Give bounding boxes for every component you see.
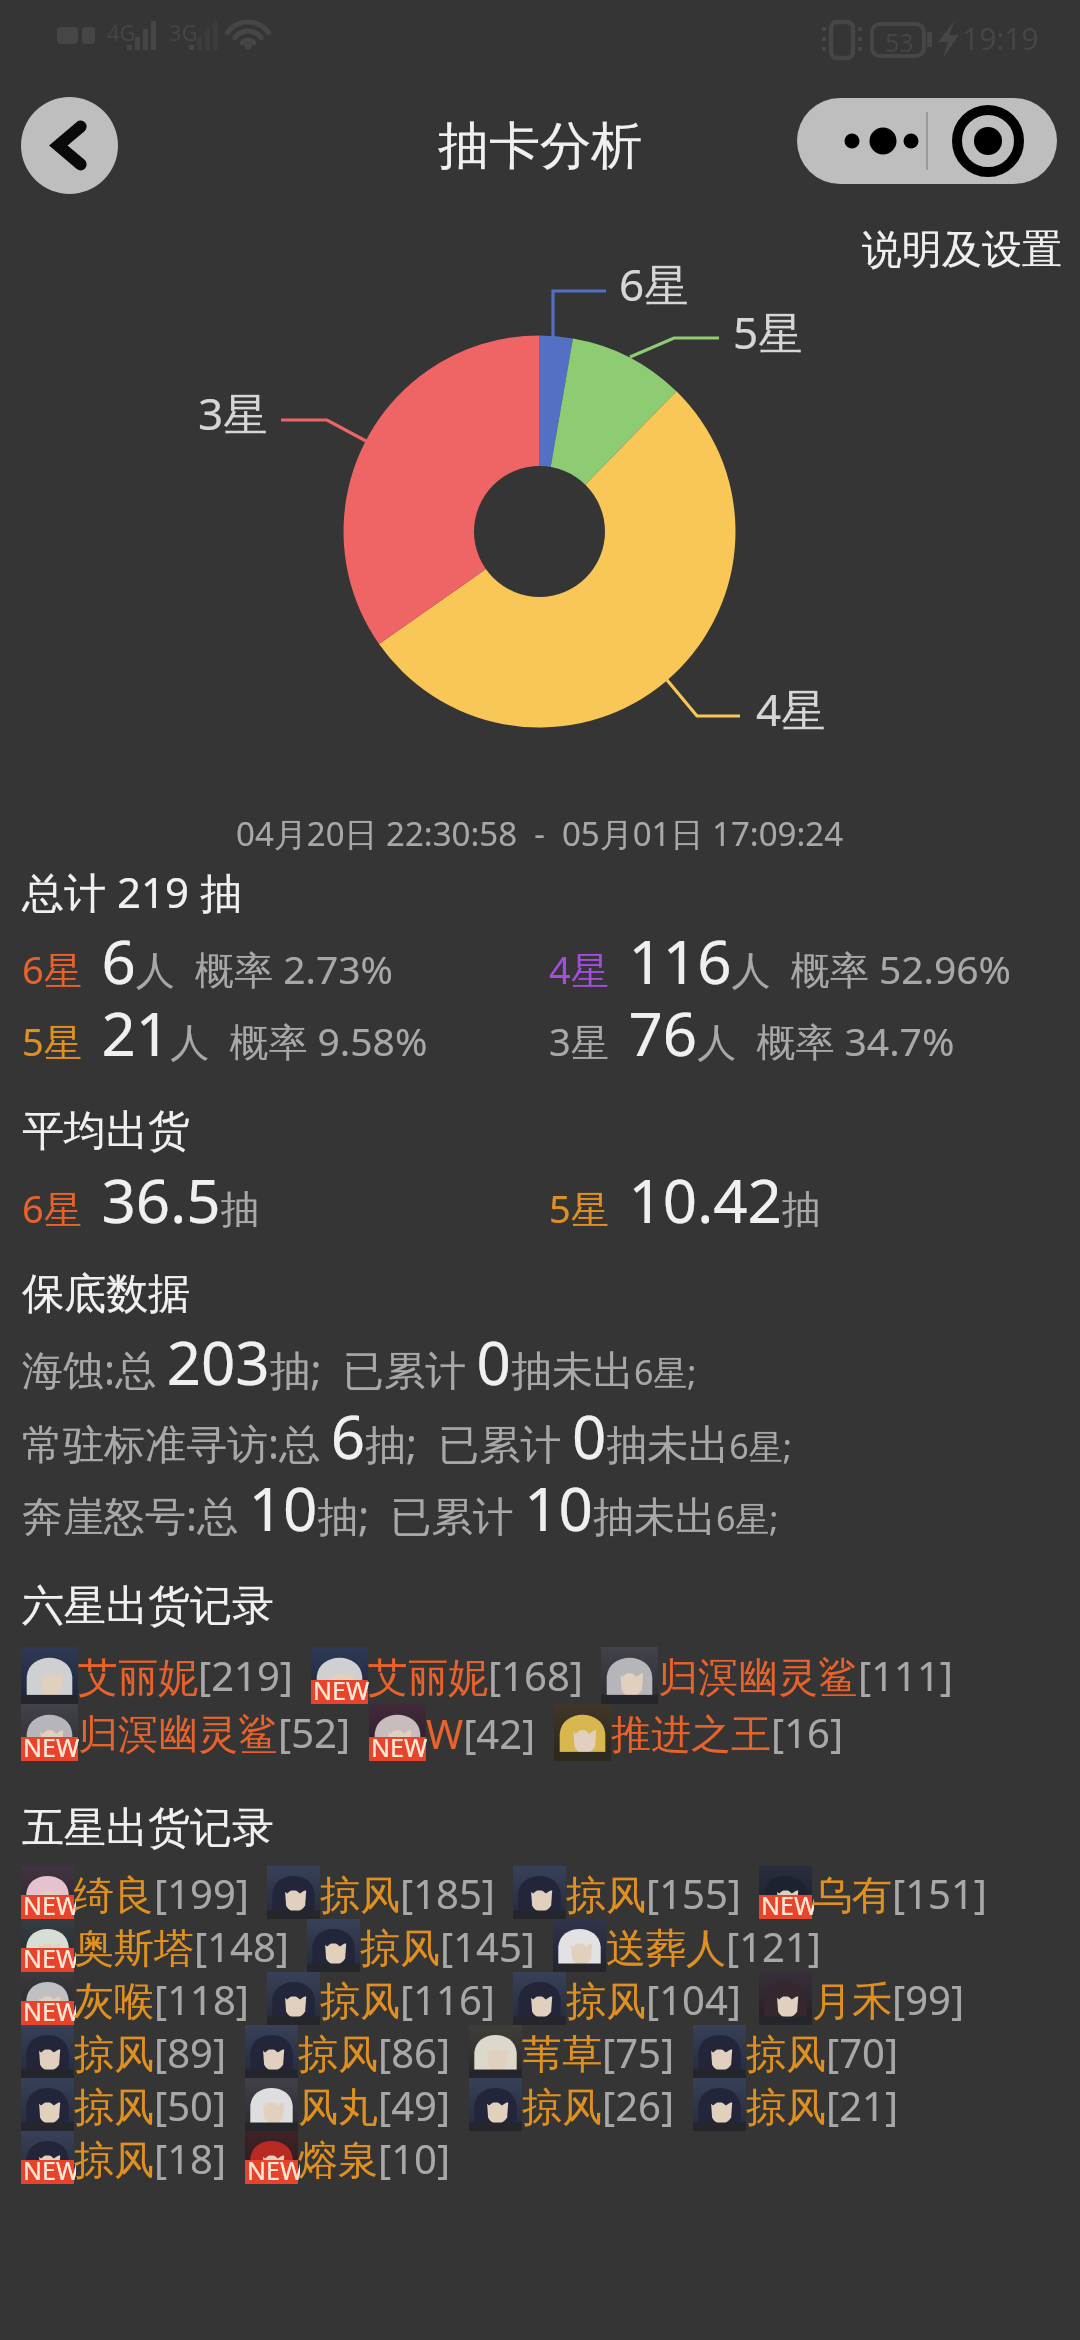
staticText: 4G xyxy=(107,17,136,47)
staticText: 掠风[70] xyxy=(746,2025,899,2078)
button[interactable]: NEW xyxy=(759,1866,987,1919)
button[interactable]: NEW xyxy=(21,1919,289,1972)
staticText: 5星 xyxy=(733,302,803,362)
staticText: NEW xyxy=(23,2153,76,2187)
button[interactable]: 推进之王[16] xyxy=(554,1704,844,1761)
staticText: W[42] xyxy=(426,1706,536,1760)
staticText: 掠风[155] xyxy=(566,1866,741,1919)
staticText: 常驻标准寻访:总 6抽; 已累计 0抽未出6星; xyxy=(22,1395,792,1477)
button[interactable]: 归溟幽灵鲨[111] xyxy=(601,1647,953,1704)
staticText: 掠风[185] xyxy=(320,1866,495,1919)
staticText: 掠风[116] xyxy=(320,1972,495,2025)
button[interactable]: 苇草[75] xyxy=(469,2025,675,2078)
staticText: NEW xyxy=(23,1730,80,1764)
staticText: NEW xyxy=(23,1941,76,1975)
staticText: 艾丽妮[168] xyxy=(368,1648,583,1703)
staticText: 6星 6人 概率 2.73% xyxy=(22,920,394,1002)
staticText: NEW xyxy=(371,1730,428,1764)
staticText: 奔崖怒号:总 10抽; 已累计 10抽未出6星; xyxy=(22,1467,779,1549)
button[interactable]: NEW xyxy=(311,1647,583,1704)
staticText: 掠风[89] xyxy=(74,2025,227,2078)
staticText: 掠风[26] xyxy=(522,2078,675,2131)
staticText: 灰喉[118] xyxy=(74,1972,249,2025)
button[interactable]: 掠风[185] xyxy=(267,1866,495,1919)
staticText: NEW xyxy=(313,1673,370,1707)
staticText: 海蚀:总 203抽; 已累计 0抽未出6星; xyxy=(22,1321,697,1403)
staticText: 平均出货 xyxy=(22,1105,190,1158)
staticText: 月禾[99] xyxy=(812,1972,965,2025)
staticText: NEW xyxy=(23,1888,76,1922)
button[interactable]: NEW xyxy=(369,1704,536,1761)
staticText: 6星 xyxy=(619,254,689,314)
staticText: 04月20日 22:30:58 - 05月01日 17:09:24 xyxy=(236,811,844,856)
button[interactable]: 掠风[86] xyxy=(245,2025,451,2078)
staticText: 掠风[50] xyxy=(74,2078,227,2131)
button[interactable]: NEW xyxy=(21,1704,351,1761)
button[interactable]: 掠风[21] xyxy=(693,2078,899,2131)
staticText: NEW xyxy=(247,2153,300,2187)
button[interactable]: 掠风[50] xyxy=(21,2078,227,2131)
staticText: 绮良[199] xyxy=(74,1866,249,1919)
button[interactable]: 送葬人[121] xyxy=(553,1919,821,1972)
staticText: 艾丽妮[219] xyxy=(78,1648,293,1703)
button[interactable]: 说明及设置 xyxy=(862,224,1062,274)
staticText: 3G xyxy=(169,17,198,47)
staticText: 4星 xyxy=(756,679,826,739)
button[interactable]: 掠风[70] xyxy=(693,2025,899,2078)
staticText: 归溟幽灵鲨[52] xyxy=(78,1705,351,1760)
staticText: 熔泉[10] xyxy=(298,2131,451,2184)
button[interactable]: 月禾[99] xyxy=(759,1972,965,2025)
staticText: 掠风[86] xyxy=(298,2025,451,2078)
button[interactable]: 掠风[89] xyxy=(21,2025,227,2078)
staticText: 五星出货记录 xyxy=(22,1802,274,1855)
staticText: 53 xyxy=(885,25,914,59)
staticText: 风丸[49] xyxy=(298,2078,451,2131)
staticText: 5星 10.42抽 xyxy=(549,1159,821,1241)
staticText: 6星 36.5抽 xyxy=(22,1159,260,1241)
staticText: 总计 219 抽 xyxy=(22,863,242,920)
staticText: 掠风[104] xyxy=(566,1972,741,2025)
button[interactable]: NEW xyxy=(21,2131,227,2184)
button[interactable]: 掠风[26] xyxy=(469,2078,675,2131)
staticText: 归溟幽灵鲨[111] xyxy=(658,1648,953,1703)
staticText: 乌有[151] xyxy=(812,1866,987,1919)
staticText: NEW xyxy=(23,1994,76,2028)
staticText: NEW xyxy=(761,1888,814,1922)
staticText: 掠风[18] xyxy=(74,2131,227,2184)
button[interactable]: 掠风[145] xyxy=(307,1919,535,1972)
button[interactable]: More options xyxy=(797,98,1057,184)
staticText: 奥斯塔[148] xyxy=(74,1919,289,1972)
staticText: 掠风[145] xyxy=(360,1919,535,1972)
staticText: 送葬人[121] xyxy=(606,1919,821,1972)
staticText: 3星 76人 概率 34.7% xyxy=(549,992,955,1074)
button[interactable]: 掠风[155] xyxy=(513,1866,741,1919)
button[interactable]: 艾丽妮[219] xyxy=(21,1647,293,1704)
staticText: 掠风[21] xyxy=(746,2078,899,2131)
staticText: 抽卡分析 xyxy=(438,114,642,178)
button[interactable]: NEW xyxy=(245,2131,451,2184)
button[interactable]: NEW xyxy=(21,1972,249,2025)
button[interactable]: NEW xyxy=(21,1866,249,1919)
button[interactable]: 掠风[104] xyxy=(513,1972,741,2025)
button[interactable]: 风丸[49] xyxy=(245,2078,451,2131)
staticText: 4星 116人 概率 52.96% xyxy=(549,920,1011,1002)
staticText: 19:19 xyxy=(962,18,1039,59)
button[interactable]: Back xyxy=(21,97,118,194)
staticText: 六星出货记录 xyxy=(22,1580,274,1633)
staticText: 3星 xyxy=(198,383,268,443)
staticText: 保底数据 xyxy=(22,1268,190,1321)
button[interactable]: 掠风[116] xyxy=(267,1972,495,2025)
staticText: 推进之王[16] xyxy=(611,1705,844,1760)
staticText: 苇草[75] xyxy=(522,2025,675,2078)
staticText: 5星 21人 概率 9.58% xyxy=(22,992,428,1074)
